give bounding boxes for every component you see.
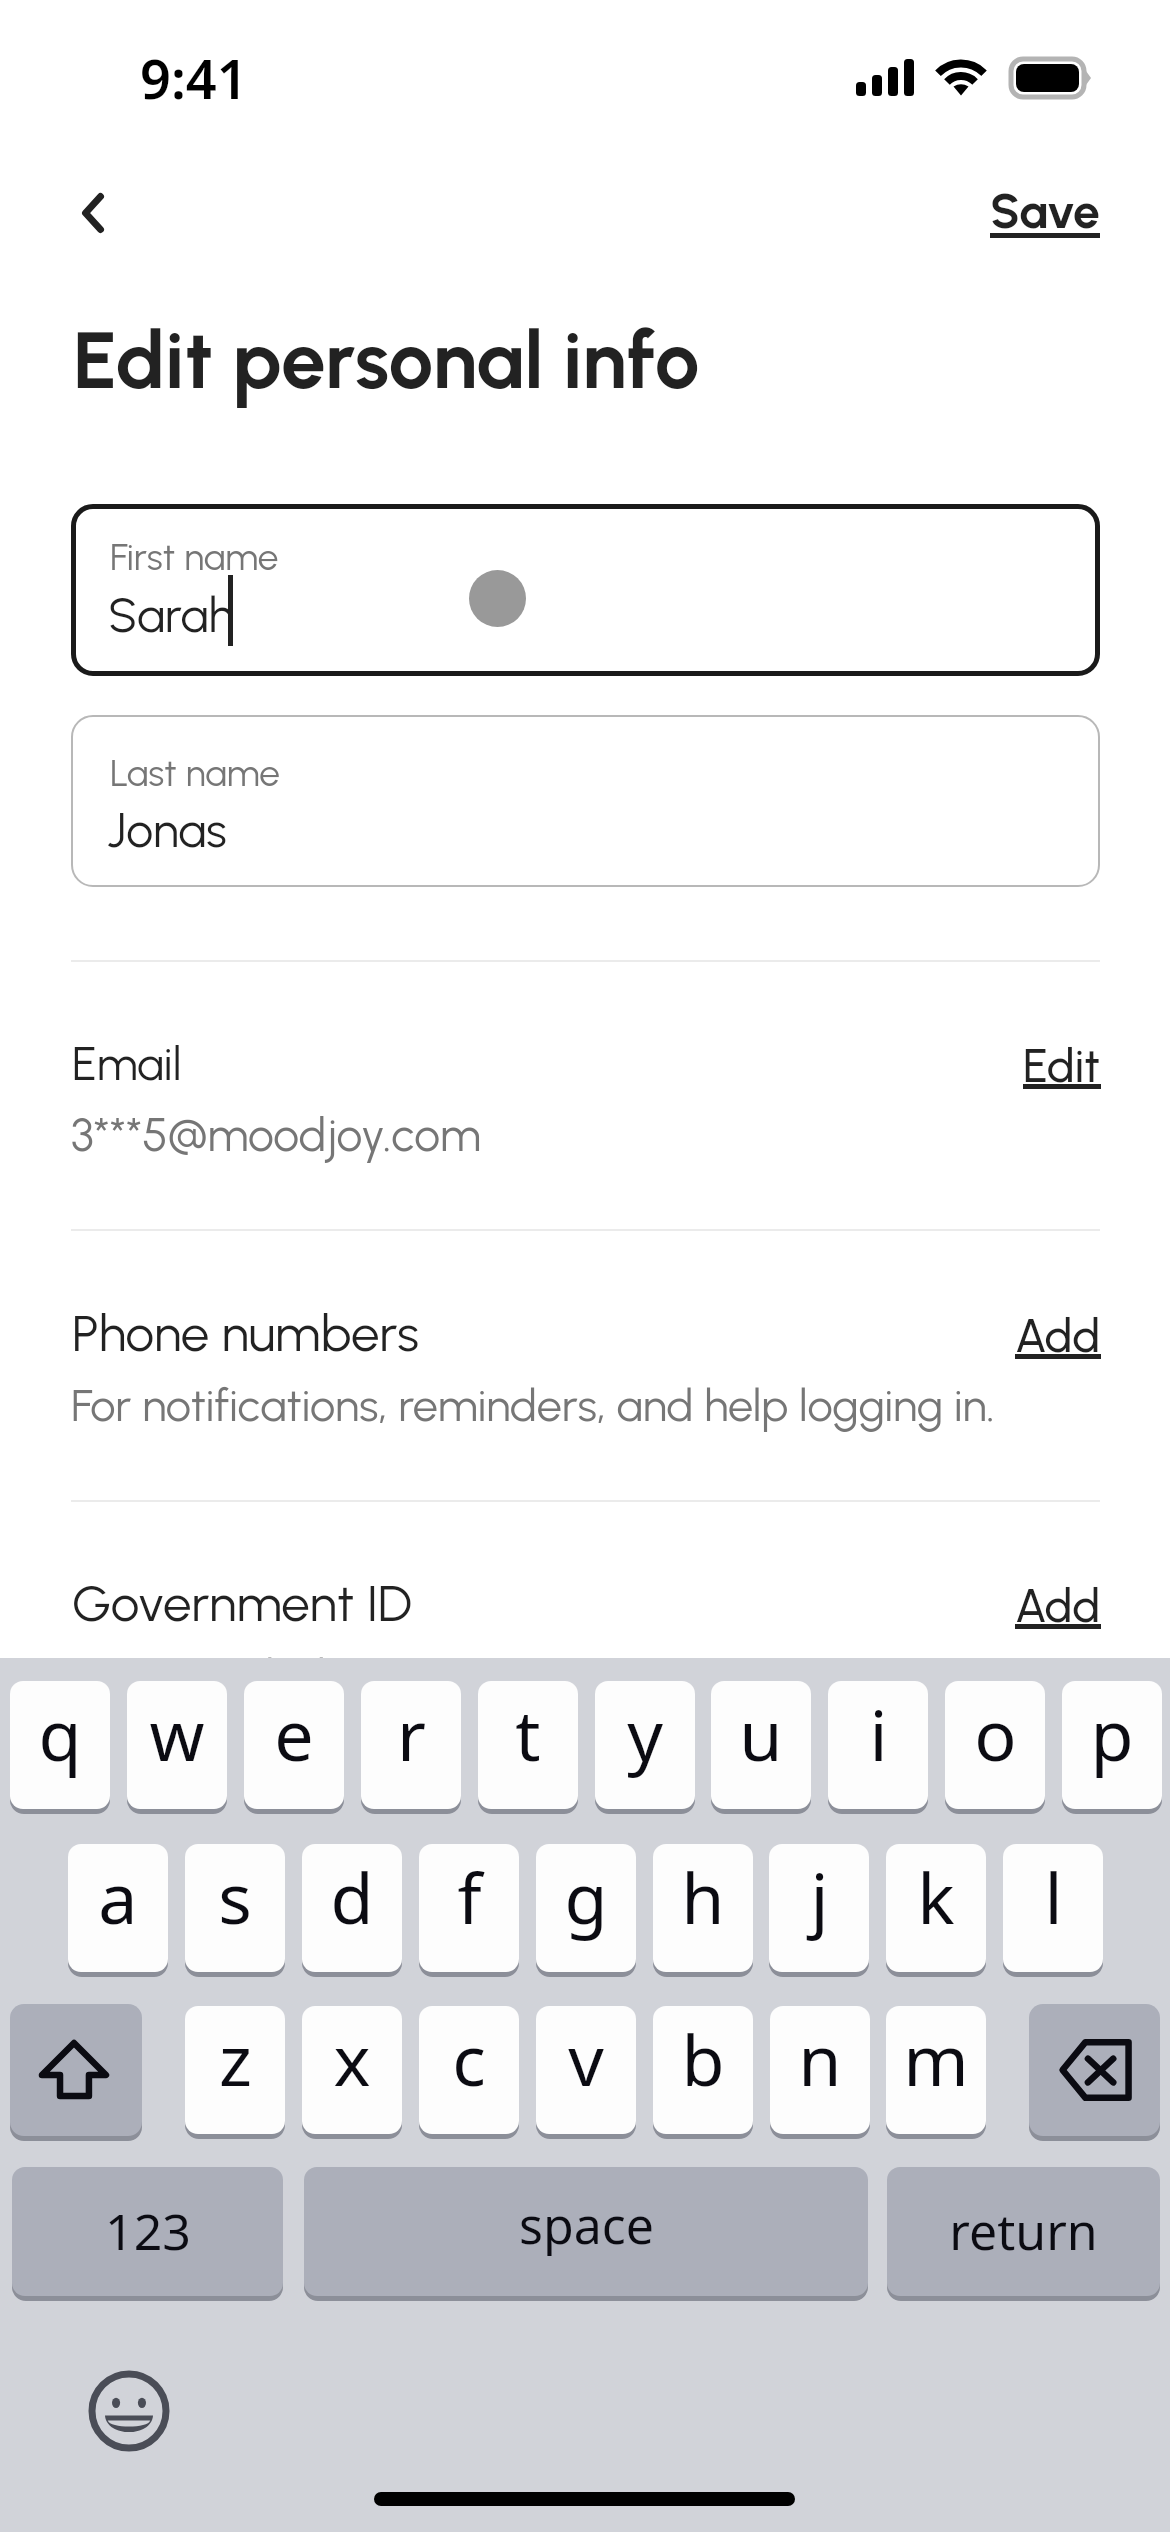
button[interactable]: Last name — [71, 715, 1100, 887]
button[interactable]: First name — [71, 504, 1100, 676]
button[interactable]: b — [653, 2006, 753, 2139]
button[interactable]: s — [185, 1844, 285, 1977]
staticText: Add — [1015, 1308, 1101, 1363]
button[interactable]: p — [1062, 1681, 1162, 1814]
staticText: f — [457, 1849, 482, 1944]
button[interactable]: n — [770, 2006, 870, 2139]
staticText: Government ID — [72, 1573, 413, 1634]
button[interactable]: 123 — [12, 2167, 283, 2301]
button[interactable]: Back — [49, 169, 137, 257]
button[interactable]: x — [302, 2006, 402, 2139]
button[interactable]: Backspace — [1029, 2004, 1160, 2141]
staticText: 123 — [105, 2197, 191, 2265]
staticText: Edit personal info — [73, 312, 700, 408]
staticText: b — [681, 2011, 725, 2106]
staticText: r — [397, 1686, 426, 1781]
button[interactable]: k — [886, 1844, 986, 1977]
button[interactable]: Save — [930, 154, 1100, 272]
staticText: z — [219, 2011, 252, 2106]
button[interactable]: m — [886, 2006, 986, 2139]
button[interactable]: e — [244, 1681, 344, 1814]
staticText: w — [149, 1686, 205, 1781]
button[interactable] — [0, 996, 1170, 1166]
button[interactable]: a — [68, 1844, 168, 1977]
button[interactable]: Add — [1015, 1578, 1101, 1638]
button[interactable]: l — [1003, 1844, 1103, 1977]
button[interactable]: space — [304, 2167, 868, 2301]
staticText: Jonas — [107, 801, 227, 859]
staticText: t — [515, 1686, 541, 1781]
button[interactable] — [0, 1263, 1170, 1433]
staticText: Phone numbers — [72, 1303, 419, 1364]
staticText: l — [1044, 1849, 1063, 1944]
button[interactable]: d — [302, 1844, 402, 1977]
staticText: space — [519, 2191, 654, 2259]
staticText: 9:41 — [140, 41, 248, 115]
staticText: i — [869, 1686, 888, 1781]
staticText: e — [274, 1686, 314, 1781]
staticText: Not provided — [71, 1648, 326, 1702]
button[interactable]: h — [653, 1844, 753, 1977]
staticText: j — [810, 1849, 829, 1944]
staticText: p — [1090, 1686, 1134, 1781]
staticText: Edit — [1023, 1038, 1101, 1093]
staticText: h — [681, 1849, 725, 1944]
staticText: a — [98, 1849, 138, 1944]
button[interactable]: t — [478, 1681, 578, 1814]
staticText: 3***5@moodjoy.com — [71, 1107, 481, 1162]
staticText: q — [38, 1686, 82, 1781]
button[interactable]: j — [769, 1844, 869, 1977]
staticText: m — [903, 2011, 969, 2106]
staticText: v — [568, 2011, 604, 2106]
staticText: For notifications, reminders, and help l… — [71, 1378, 995, 1432]
button[interactable]: q — [10, 1681, 110, 1814]
button[interactable]: Emoji — [88, 2370, 170, 2452]
button[interactable]: r — [361, 1681, 461, 1814]
button[interactable]: w — [127, 1681, 227, 1814]
button[interactable]: z — [185, 2006, 285, 2139]
staticText: o — [974, 1686, 1017, 1781]
button[interactable]: g — [536, 1844, 636, 1977]
staticText: Add — [1015, 1578, 1101, 1633]
staticText: Save — [990, 182, 1100, 240]
button[interactable]: y — [595, 1681, 695, 1814]
staticText: g — [564, 1849, 608, 1944]
button[interactable]: c — [419, 2006, 519, 2139]
staticText: return — [949, 2197, 1098, 2265]
staticText: Last name — [110, 751, 280, 795]
staticText: c — [452, 2011, 486, 2106]
staticText: y — [627, 1686, 663, 1781]
button[interactable]: return — [887, 2167, 1160, 2301]
button[interactable]: i — [828, 1681, 928, 1814]
staticText: Sarah — [108, 586, 235, 644]
button[interactable]: u — [711, 1681, 811, 1814]
button[interactable] — [0, 1533, 1170, 1703]
button[interactable]: Edit — [1023, 1038, 1101, 1098]
staticText: u — [739, 1686, 783, 1781]
staticText: x — [333, 2011, 371, 2106]
button[interactable]: Add — [1015, 1308, 1101, 1368]
staticText: Email — [72, 1036, 182, 1091]
button[interactable]: f — [419, 1844, 519, 1977]
staticText: First name — [110, 535, 279, 579]
staticText: n — [798, 2011, 842, 2106]
staticText: k — [917, 1849, 955, 1944]
button[interactable]: o — [945, 1681, 1045, 1814]
staticText: s — [218, 1849, 252, 1944]
button[interactable]: Shift — [10, 2004, 142, 2141]
staticText: d — [330, 1849, 374, 1944]
button[interactable]: v — [536, 2006, 636, 2139]
